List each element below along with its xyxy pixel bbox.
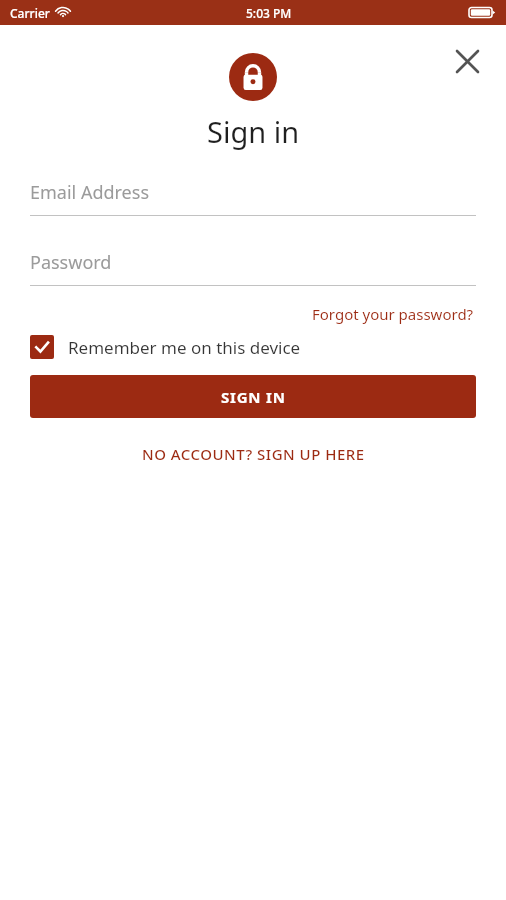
staticText: Carrier xyxy=(10,5,50,21)
staticText: Remember me on this device xyxy=(68,336,301,359)
button[interactable]: Close xyxy=(447,41,487,81)
button[interactable]: Remember me on this device xyxy=(30,335,476,359)
button[interactable]: Forgot your password? xyxy=(310,300,476,328)
button[interactable]: Password xyxy=(30,247,476,286)
staticText: Email Address xyxy=(30,180,150,205)
button[interactable]: NO ACCOUNT? SIGN UP HERE xyxy=(132,438,375,470)
staticText: SIGN IN xyxy=(221,387,286,407)
staticText: Forgot your password? xyxy=(312,304,474,324)
button[interactable]: Email Address xyxy=(30,177,476,216)
staticText: Sign in xyxy=(207,112,300,151)
staticText: NO ACCOUNT? SIGN UP HERE xyxy=(142,444,365,464)
button[interactable]: SIGN IN xyxy=(30,375,476,418)
staticText: 5:03 PM xyxy=(246,5,292,21)
staticText: Password xyxy=(30,250,112,275)
